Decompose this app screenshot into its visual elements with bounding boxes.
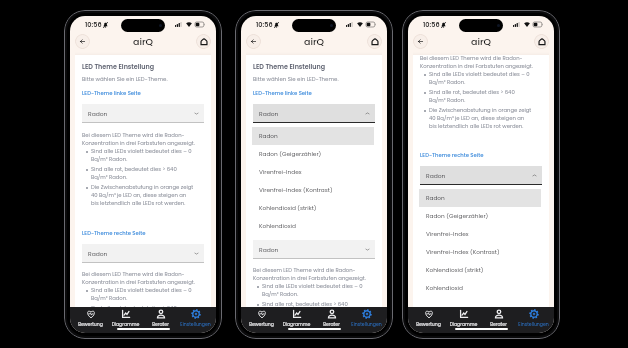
staticText: LED-Theme rechte Seite <box>420 151 484 158</box>
button[interactable]: Zurück <box>413 34 428 49</box>
button[interactable]: Radon <box>82 104 204 123</box>
staticText: 10:56 <box>423 20 440 29</box>
staticText: Diagramme <box>446 321 481 327</box>
button[interactable]: Diagramme <box>279 307 314 333</box>
staticText: Bewertung <box>244 321 279 327</box>
button[interactable]: Startseite <box>534 34 549 49</box>
staticText: LED-Theme rechte Seite <box>82 229 146 236</box>
staticText: airQ <box>133 35 154 48</box>
staticText: Einstellungen <box>349 321 384 327</box>
staticText: Berater <box>481 321 516 327</box>
button[interactable]: Bewertung <box>73 307 108 333</box>
button[interactable]: Radon <box>252 127 374 145</box>
staticText: Virenfrei-Index (Kontrast) <box>426 248 500 256</box>
button[interactable]: Berater <box>481 307 516 333</box>
button[interactable]: Kohlendioxid (strikt) <box>252 199 374 217</box>
button[interactable]: Radon <box>420 166 542 185</box>
staticText: airQ <box>471 35 492 48</box>
button[interactable]: Berater <box>143 307 178 333</box>
button[interactable]: Radon <box>253 104 375 123</box>
staticText: Bitte wählen Sie ein LED-Theme. <box>253 75 339 83</box>
staticText: Kohlendioxid <box>259 222 296 230</box>
staticText: Bei diesem LED Theme wird die Radon- Kon… <box>253 266 366 282</box>
button[interactable]: Virenfrei-Index <box>419 225 541 243</box>
staticText: Radon <box>426 172 446 180</box>
button[interactable]: Einstellungen <box>516 307 551 333</box>
staticText: Sind alle LEDs violett bedeutet dies – 0… <box>429 70 530 86</box>
staticText: 10:56 <box>256 20 273 29</box>
staticText: LED Theme Einstellung <box>253 62 326 71</box>
button[interactable]: Zurück <box>246 34 261 49</box>
staticText: Sind alle LEDs violett bedeutet dies – 0… <box>91 147 192 163</box>
button[interactable]: Kohlendioxid <box>252 217 374 235</box>
staticText: Sind alle LEDs violett bedeutet dies – 0… <box>91 286 192 302</box>
staticText: Radon (Geigerzähler) <box>426 212 489 220</box>
staticText: Radon <box>88 250 108 258</box>
staticText: Virenfrei-Index (Kontrast) <box>259 186 333 194</box>
button[interactable]: Virenfrei-Index (Kontrast) <box>252 181 374 199</box>
staticText: Sind alle rot, bedeutet dies > 640 Bq/m³… <box>91 304 177 307</box>
staticText: Sind alle rot, bedeutet dies > 640 Bq/m³… <box>429 88 515 104</box>
button[interactable]: Startseite <box>196 34 211 49</box>
button[interactable]: Diagramme <box>108 307 143 333</box>
button[interactable]: Virenfrei-Index (Kontrast) <box>419 243 541 261</box>
button[interactable]: Virenfrei-Index <box>252 163 374 181</box>
button[interactable]: Einstellungen <box>349 307 384 333</box>
staticText: 10:56 <box>85 20 102 29</box>
staticText: Radon <box>259 132 278 140</box>
staticText: LED-Theme linke Seite <box>253 89 312 96</box>
staticText: Diagramme <box>108 321 143 327</box>
staticText: Bewertung <box>73 321 108 327</box>
button[interactable]: Radon (Geigerzähler) <box>419 207 541 225</box>
staticText: Die Zwischenabstufung in orange zeigt 40… <box>91 183 194 207</box>
staticText: Bei diesem LED Theme wird die Radon- Kon… <box>82 131 195 147</box>
button[interactable]: Radon (Geigerzähler) <box>252 145 374 163</box>
staticText: Bitte wählen Sie ein LED-Theme. <box>82 75 168 83</box>
button[interactable]: Kohlendioxid (strikt) <box>419 261 541 279</box>
staticText: Sind alle rot, bedeutet dies > 640 Bq/m³… <box>91 165 177 181</box>
staticText: Kohlendioxid (strikt) <box>259 204 317 212</box>
staticText: Diagramme <box>279 321 314 327</box>
button[interactable]: Bewertung <box>244 307 279 333</box>
staticText: LED Theme Einstellung <box>82 62 155 71</box>
button[interactable]: Radon <box>253 240 375 259</box>
button[interactable]: Radon <box>419 189 541 207</box>
staticText: Sind alle rot, bedeutet dies > 640 Bq/m³… <box>262 300 348 307</box>
staticText: Kohlendioxid <box>426 284 463 292</box>
staticText: Radon <box>259 110 279 118</box>
staticText: Berater <box>143 321 178 327</box>
staticText: LED-Theme linke Seite <box>82 89 141 96</box>
staticText: Virenfrei-Index <box>426 230 469 238</box>
staticText: Radon <box>426 194 445 202</box>
staticText: Einstellungen <box>178 321 213 327</box>
button[interactable]: Zurück <box>75 34 90 49</box>
button[interactable]: Kohlendioxid <box>419 279 541 297</box>
staticText: Bewertung <box>411 321 446 327</box>
button[interactable]: Bewertung <box>411 307 446 333</box>
button[interactable]: Berater <box>314 307 349 333</box>
staticText: Virenfrei-Index <box>259 168 302 176</box>
button[interactable]: Radon <box>82 244 204 263</box>
staticText: Die Zwischenabstufung in orange zeigt 40… <box>429 106 532 130</box>
staticText: airQ <box>304 35 325 48</box>
button[interactable]: Einstellungen <box>178 307 213 333</box>
staticText: Radon (Geigerzähler) <box>259 150 322 158</box>
button[interactable]: Diagramme <box>446 307 481 333</box>
staticText: Einstellungen <box>516 321 551 327</box>
staticText: Bei diesem LED Theme wird die Radon- Kon… <box>82 270 195 286</box>
button[interactable]: Startseite <box>367 34 382 49</box>
staticText: Bei diesem LED Theme wird die Radon- Kon… <box>420 54 533 70</box>
staticText: Sind alle LEDs violett bedeutet dies – 0… <box>262 282 363 298</box>
staticText: Berater <box>314 321 349 327</box>
staticText: Radon <box>88 110 108 118</box>
staticText: Radon <box>259 246 279 254</box>
staticText: Kohlendioxid (strikt) <box>426 266 484 274</box>
